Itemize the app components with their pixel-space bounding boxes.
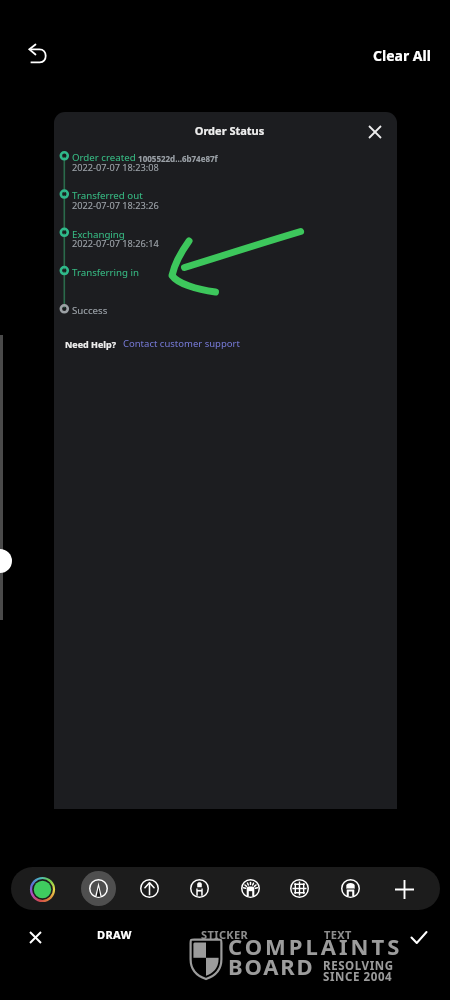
staticText: 2022-07-07 18:23:08 xyxy=(72,161,159,174)
button[interactable]: Marker xyxy=(182,871,217,906)
button[interactable]: TEXT xyxy=(298,922,378,947)
button[interactable]: Clear All xyxy=(373,46,431,65)
button[interactable]: Highlighter xyxy=(233,871,268,906)
staticText: Order Status xyxy=(58,123,397,138)
staticText: Need Help? xyxy=(65,338,117,350)
staticText: SINCE 2004 xyxy=(323,969,393,985)
button[interactable]: Done xyxy=(403,921,435,953)
staticText: 2022-07-07 18:26:14 xyxy=(72,237,159,250)
staticText: STICKER xyxy=(201,927,249,942)
button[interactable]: Contact customer support xyxy=(123,337,240,350)
button[interactable]: Pen xyxy=(81,871,116,906)
staticText: TEXT xyxy=(324,927,352,942)
button[interactable]: Eraser xyxy=(333,871,368,906)
button[interactable]: Close xyxy=(359,116,390,147)
staticText: Contact customer support xyxy=(123,337,240,350)
staticText: Order created xyxy=(72,151,136,164)
staticText: Transferring in xyxy=(72,266,140,279)
staticText: Success xyxy=(72,304,108,317)
staticText: Transferred out xyxy=(72,189,143,202)
button[interactable]: Arrow xyxy=(132,871,167,906)
staticText: DRAW xyxy=(97,927,132,942)
staticText: 2022-07-07 18:23:26 xyxy=(72,199,159,212)
staticText: Exchanging xyxy=(72,228,125,241)
button[interactable]: Color xyxy=(26,873,58,905)
button[interactable]: Mosaic xyxy=(282,871,317,906)
staticText: COMPLAINTS xyxy=(228,931,403,961)
staticText: 1005522d...6b74e87f xyxy=(136,153,218,164)
staticText: RESOLVING xyxy=(323,958,394,974)
button[interactable]: Cancel xyxy=(19,921,51,953)
staticText: Clear All xyxy=(373,46,431,65)
button[interactable]: Undo xyxy=(20,35,56,71)
button[interactable]: DRAW xyxy=(74,922,154,947)
staticText: BOARD xyxy=(228,951,315,981)
button[interactable]: STICKER xyxy=(185,922,265,947)
button[interactable]: Add xyxy=(388,873,420,905)
